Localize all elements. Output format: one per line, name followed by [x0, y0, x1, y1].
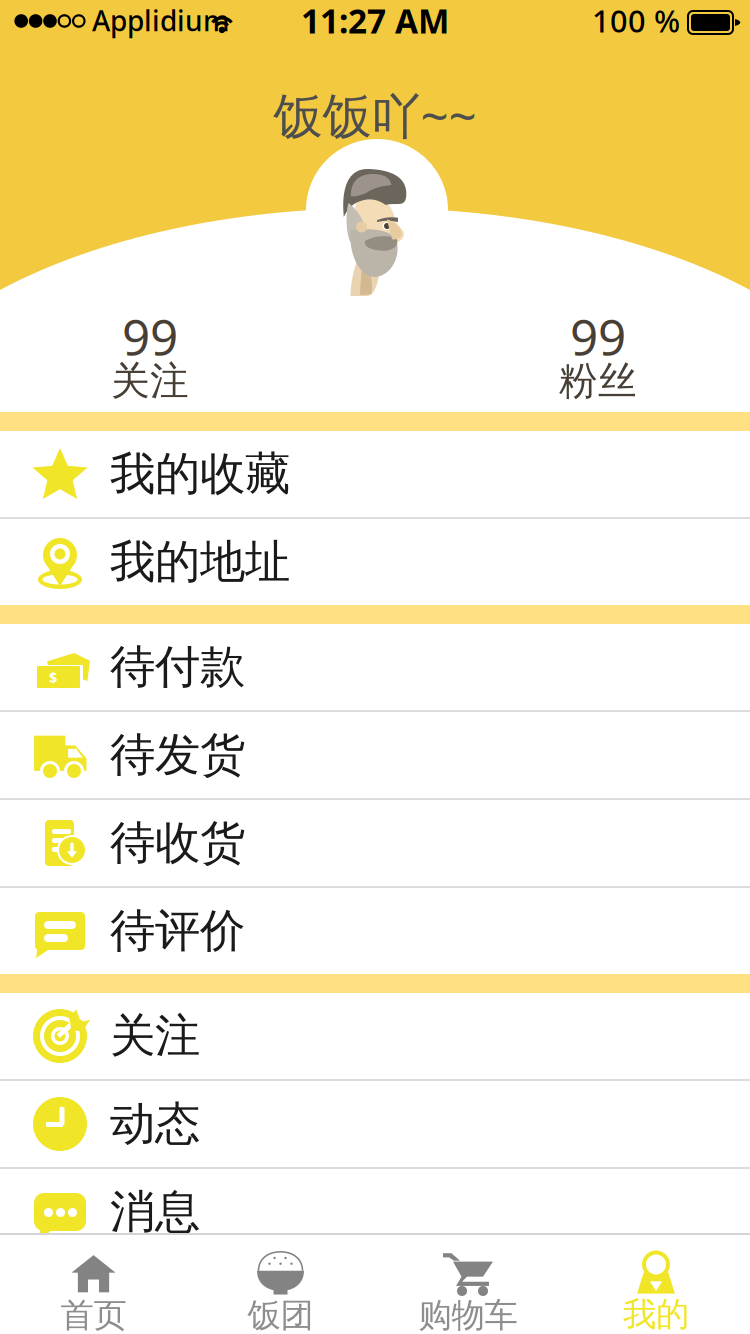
staticText: 我的 [623, 1294, 689, 1334]
button[interactable]: 99 [517, 312, 679, 400]
button[interactable]: $ [0, 624, 750, 710]
staticText: 首页 [60, 1295, 126, 1334]
button[interactable]: 消息 [0, 1169, 750, 1255]
button[interactable]: 动态 [0, 1081, 750, 1167]
staticText: 待收货 [110, 815, 245, 871]
staticText: 饭饭吖~~ [273, 82, 476, 147]
button[interactable]: 关注 [0, 993, 750, 1079]
staticText: 关注 [110, 1008, 200, 1064]
button[interactable]: 首页 [0, 1235, 187, 1334]
staticText: 100 % [592, 0, 680, 41]
staticText: 购物车 [418, 1295, 517, 1334]
staticText: 99 [570, 303, 626, 369]
staticText: 关注 [111, 357, 189, 405]
button[interactable]: 饭团 [187, 1235, 374, 1334]
staticText: 粉丝 [559, 357, 637, 405]
staticText: 待发货 [110, 727, 245, 783]
button[interactable]: 待收货 [0, 800, 750, 886]
staticText: 99 [122, 303, 178, 369]
button[interactable]: 99 [69, 312, 231, 400]
button[interactable]: 待评价 [0, 888, 750, 974]
staticText: 待付款 [110, 639, 245, 695]
staticText: 我的地址 [110, 534, 290, 590]
button[interactable]: 购物车 [374, 1235, 562, 1334]
button[interactable]: 我的地址 [0, 519, 750, 605]
button[interactable]: 待发货 [0, 712, 750, 798]
staticText: $ [49, 667, 57, 687]
staticText: Applidium [92, 2, 230, 39]
button[interactable]: 我的 [562, 1235, 750, 1334]
staticText: 饭团 [247, 1295, 313, 1334]
staticText: 消息 [110, 1184, 200, 1240]
button[interactable]: 我的收藏 [0, 431, 750, 517]
staticText: 待评价 [110, 903, 245, 959]
staticText: 11:27 AM [301, 0, 449, 43]
staticText: 动态 [110, 1096, 200, 1152]
staticText: 我的收藏 [110, 446, 290, 502]
